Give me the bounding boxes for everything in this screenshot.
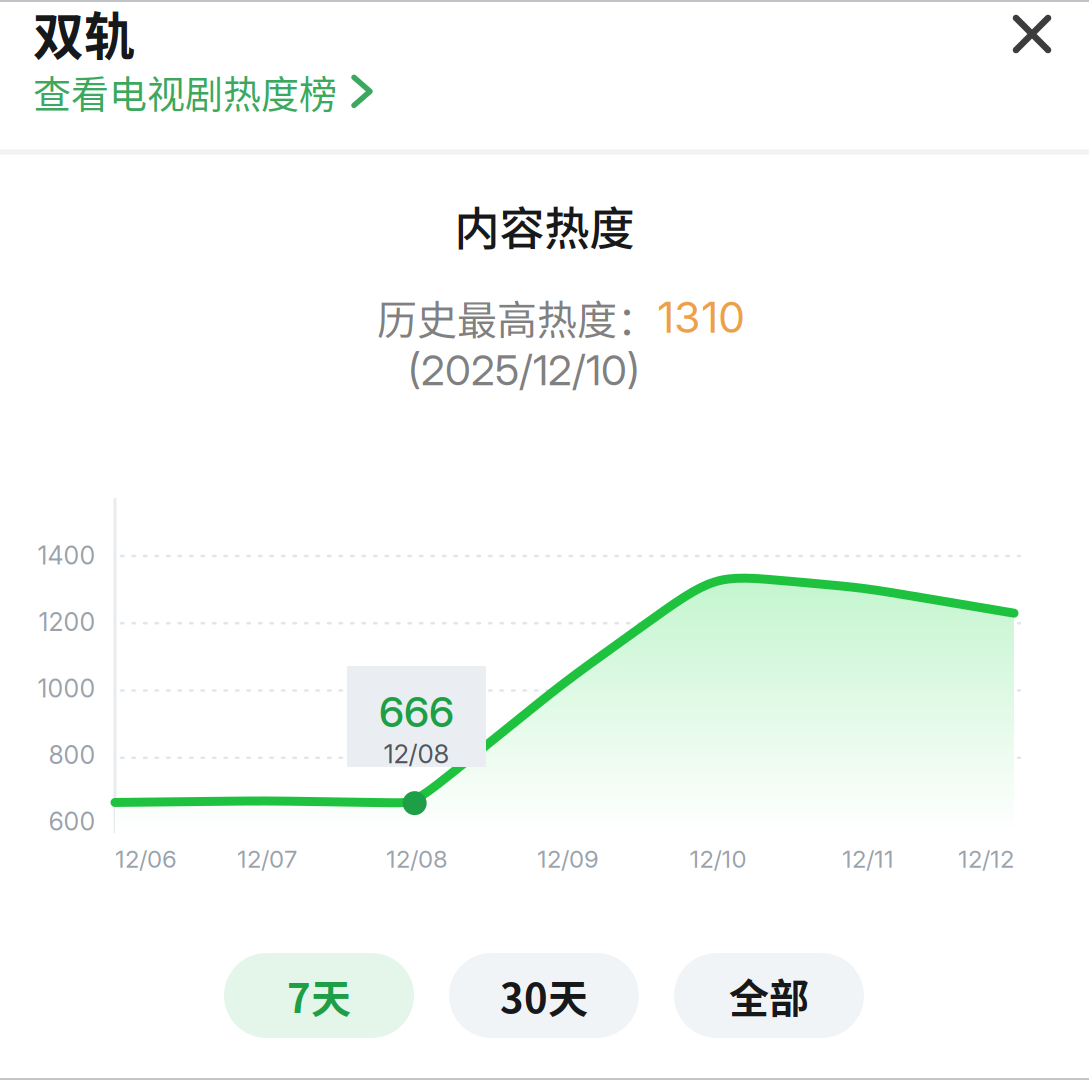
staticText: 12/06 <box>115 844 177 873</box>
button[interactable]: 30天 <box>449 953 639 1038</box>
staticText: 666 <box>379 686 454 737</box>
staticText: 1200 <box>38 607 95 637</box>
staticText: 800 <box>48 740 95 770</box>
staticText: 12/11 <box>842 844 894 873</box>
staticText: 12/12 <box>958 844 1014 873</box>
staticText: 内容热度 <box>454 193 634 259</box>
staticText: 7天 <box>287 966 351 1024</box>
staticText: 1310 <box>657 291 745 343</box>
staticText: 查看电视剧热度榜 <box>33 64 337 119</box>
staticText: 12/10 <box>689 844 746 873</box>
button[interactable]: Close <box>1010 12 1054 56</box>
staticText: 30天 <box>500 966 588 1024</box>
staticText: 全部 <box>729 966 809 1024</box>
staticText: 12/08 <box>386 844 448 873</box>
staticText: 1000 <box>37 673 95 704</box>
staticText: 1400 <box>37 540 95 571</box>
button[interactable]: 查看电视剧热度榜 <box>33 64 373 119</box>
staticText: 12/08 <box>383 738 449 770</box>
staticText: 600 <box>48 806 95 837</box>
staticText: 12/07 <box>237 844 297 873</box>
staticText: 双轨 <box>33 0 135 70</box>
staticText: 12/09 <box>537 844 599 873</box>
button[interactable]: 7天 <box>224 953 414 1038</box>
staticText: 历史最高热度： <box>377 288 657 346</box>
button[interactable]: 全部 <box>674 953 864 1038</box>
staticText: (2025/12/10) <box>408 345 640 395</box>
